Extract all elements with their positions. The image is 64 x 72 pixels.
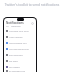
button[interactable]: Settings (31, 22, 34, 25)
button[interactable]: Kai liked (4, 58, 36, 64)
button[interactable]: Leo mentioned you (4, 46, 36, 52)
staticText: Notifications (6, 21, 24, 25)
button[interactable]: Ivy replied (4, 64, 36, 70)
staticText: Kai liked (9, 60, 18, 63)
button[interactable]: Zoe reposted (4, 52, 36, 58)
staticText: Zoe reposted (9, 54, 23, 57)
staticText: Mia followed you (9, 42, 27, 45)
button[interactable]: Mia followed you (4, 40, 36, 46)
button[interactable]: Noah replied (4, 34, 36, 40)
staticText: Ava liked your post (9, 30, 29, 33)
staticText: Twitter's toolkit to send notifications (4, 3, 60, 7)
staticText: Eli followed you (9, 70, 26, 72)
staticText: Ivy replied (9, 66, 20, 69)
staticText: Leo mentioned you (9, 48, 29, 51)
button[interactable]: Ava liked your post (4, 28, 36, 34)
staticText: Noah replied (9, 36, 23, 39)
button[interactable]: All (6, 25, 9, 28)
button[interactable]: Mentions (11, 25, 21, 28)
button[interactable]: Eli followed you (4, 70, 36, 72)
